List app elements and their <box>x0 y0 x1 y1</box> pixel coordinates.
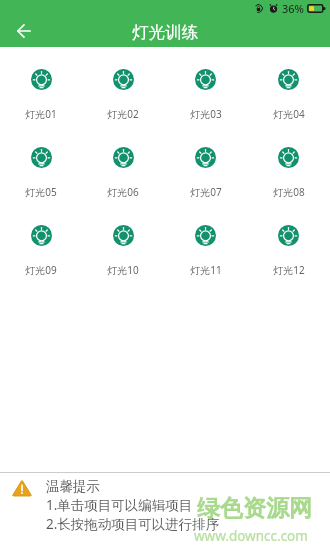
staticText: 灯光01 <box>25 107 57 121</box>
staticText: 灯光11 <box>190 263 222 277</box>
staticText: 灯光05 <box>25 185 57 199</box>
staticText: 灯光06 <box>107 185 139 199</box>
button[interactable]: Back <box>8 15 39 46</box>
staticText: 36% <box>282 1 304 16</box>
staticText: 灯光09 <box>25 263 57 277</box>
button[interactable]: 灯光12 <box>247 225 330 303</box>
button[interactable]: 灯光09 <box>0 225 82 303</box>
staticText: 温馨提示 <box>46 478 100 495</box>
staticText: 灯光07 <box>190 185 222 199</box>
button[interactable]: 灯光01 <box>0 69 82 147</box>
staticText: 灯光03 <box>190 107 222 121</box>
button[interactable]: 灯光10 <box>82 225 164 303</box>
staticText: 灯光10 <box>107 263 139 277</box>
staticText: 2.长按拖动项目可以进行排序 <box>46 515 220 533</box>
button[interactable]: 灯光03 <box>164 69 247 147</box>
staticText: 灯光训练 <box>132 22 198 43</box>
staticText: 灯光12 <box>273 263 305 277</box>
button[interactable]: 灯光05 <box>0 147 82 225</box>
button[interactable]: 灯光07 <box>164 147 247 225</box>
staticText: 绿色资源网 <box>197 494 312 523</box>
button[interactable]: 灯光02 <box>82 69 164 147</box>
button[interactable]: 灯光06 <box>82 147 164 225</box>
staticText: 灯光08 <box>273 185 305 199</box>
button[interactable]: 灯光08 <box>247 147 330 225</box>
button[interactable]: 灯光04 <box>247 69 330 147</box>
staticText: 灯光02 <box>107 107 139 121</box>
staticText: 1.单击项目可以编辑项目 <box>46 496 193 514</box>
button[interactable]: 灯光11 <box>164 225 247 303</box>
staticText: 灯光04 <box>273 107 305 121</box>
staticText: www.downcc.com <box>194 527 308 545</box>
